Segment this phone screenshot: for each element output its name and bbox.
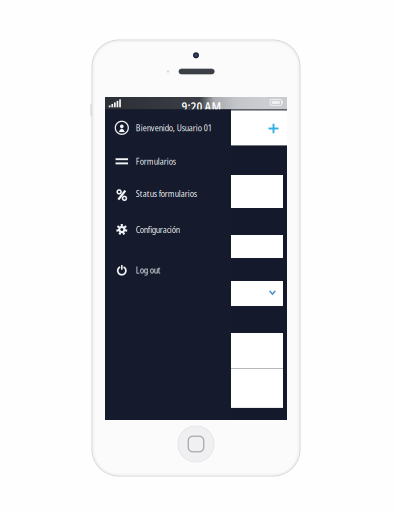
staticText: Formularios	[136, 155, 176, 167]
staticText: 9:20 AM	[181, 98, 221, 115]
button[interactable]: Configuración	[105, 214, 231, 244]
button[interactable]: Log out	[105, 255, 231, 285]
button[interactable]: Formularios	[105, 146, 231, 176]
staticText: Bienvenido, Usuario 01	[136, 122, 212, 134]
button[interactable]: Bienvenido, Usuario 01	[105, 113, 231, 143]
button[interactable]: Add	[261, 116, 285, 140]
button[interactable]: Status formularios	[105, 179, 231, 209]
staticText: Status formularios	[136, 188, 197, 200]
staticText: Log out	[136, 264, 161, 276]
staticText: Configuración	[136, 223, 180, 235]
